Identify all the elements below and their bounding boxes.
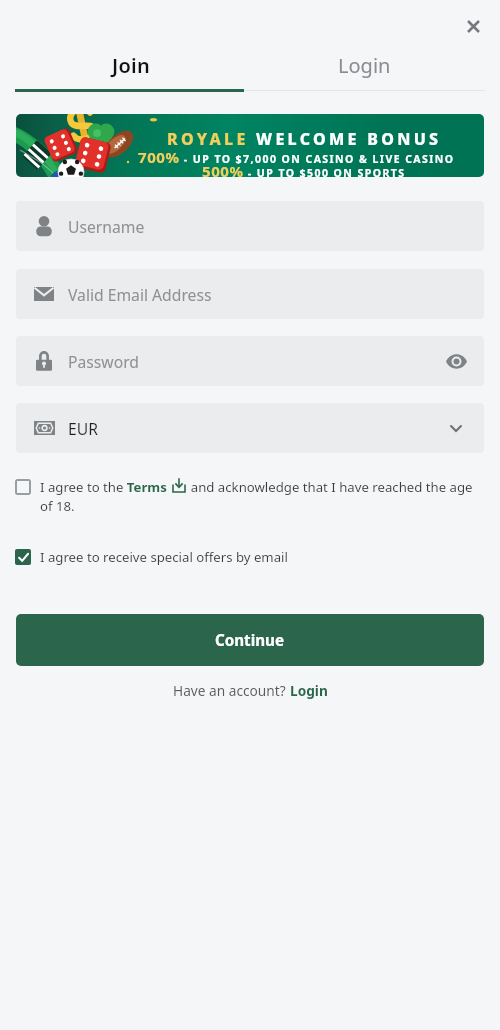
- button[interactable]: Continue: [16, 614, 484, 666]
- staticText: Password: [68, 351, 139, 372]
- staticText: 500% - UP TO $500 ON SPORTS: [202, 161, 406, 177]
- staticText: EUR: [68, 418, 98, 439]
- staticText: I agree to the Terms and acknowledge tha…: [40, 478, 485, 515]
- staticText: 700% - UP TO $7,000 ON CASINO & LIVE CAS…: [138, 147, 455, 167]
- button[interactable]: Login: [244, 44, 500, 90]
- staticText: Valid Email Address: [68, 284, 212, 305]
- button[interactable]: EUR: [16, 403, 484, 453]
- button[interactable]: ROYALE WELCOME BONUS: [16, 114, 484, 177]
- staticText: ROYALE WELCOME BONUS: [167, 128, 442, 150]
- staticText: Login: [338, 52, 391, 79]
- button[interactable]: Username: [16, 201, 484, 251]
- staticText: Join: [112, 52, 151, 79]
- staticText: I agree to receive special offers by ema…: [40, 548, 288, 566]
- button[interactable]: Login: [290, 681, 328, 700]
- button[interactable]: Join: [0, 44, 244, 90]
- button[interactable]: I agree to receive special offers by ema…: [15, 548, 485, 566]
- button[interactable]: Valid Email Address: [16, 269, 484, 319]
- staticText: Username: [68, 216, 145, 237]
- button[interactable]: Password: [16, 336, 484, 386]
- staticText: Have an account?: [173, 681, 290, 700]
- staticText: Login: [290, 681, 328, 700]
- button[interactable]: I agree to the Terms and acknowledge tha…: [15, 478, 485, 515]
- button[interactable]: Download terms: [168, 475, 189, 496]
- staticText: Continue: [215, 630, 285, 651]
- button[interactable]: Close: [457, 10, 490, 43]
